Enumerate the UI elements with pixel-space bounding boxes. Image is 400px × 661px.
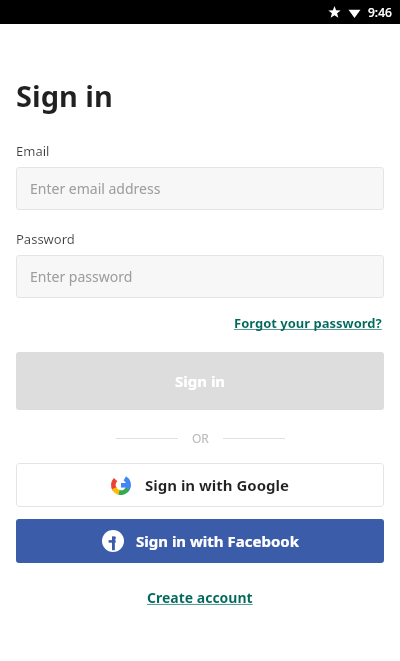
button[interactable]: Sign in: [16, 352, 384, 410]
button[interactable]: Create account: [143, 585, 257, 610]
staticText: Forgot your password?: [234, 314, 382, 332]
staticText: 9:46: [368, 4, 392, 20]
staticText: Enter password: [30, 267, 133, 286]
button[interactable]: Enter password: [16, 255, 384, 298]
button[interactable]: Sign in with Facebook: [16, 519, 384, 563]
button[interactable]: Sign in with Google: [16, 463, 384, 507]
staticText: Sign in with Facebook: [136, 531, 299, 551]
staticText: Create account: [147, 588, 253, 607]
staticText: OR: [192, 430, 209, 446]
button[interactable]: Forgot your password?: [232, 312, 384, 334]
staticText: Email: [16, 142, 50, 160]
staticText: Password: [16, 230, 75, 248]
staticText: Sign in with Google: [145, 475, 290, 495]
staticText: Sign in: [16, 76, 113, 115]
staticText: Enter email address: [30, 179, 161, 198]
button[interactable]: Enter email address: [16, 167, 384, 210]
staticText: Sign in: [175, 371, 226, 391]
